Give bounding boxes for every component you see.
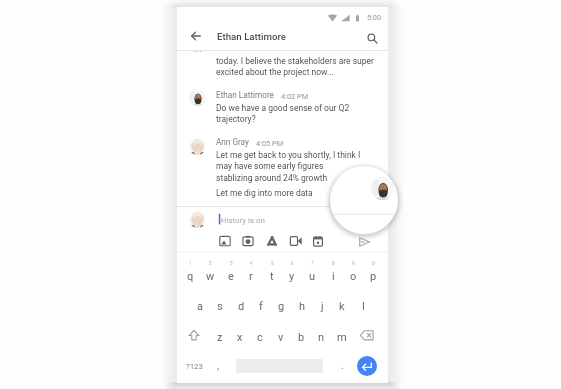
button[interactable]: Insert photo xyxy=(216,232,234,250)
staticText: . xyxy=(341,359,344,371)
staticText: Do we have a good sense of our Q2 xyxy=(216,103,350,113)
staticText: i xyxy=(332,270,335,283)
staticText: 4:02 PM xyxy=(281,92,309,101)
staticText: today. I believe the stakeholders are su… xyxy=(216,56,374,66)
button[interactable]: k xyxy=(332,295,352,317)
staticText: g xyxy=(278,300,285,313)
staticText: ?123 xyxy=(186,362,203,371)
staticText: 8 xyxy=(332,261,335,266)
staticText: n xyxy=(318,331,325,344)
staticText: 5 xyxy=(271,261,274,266)
staticText: History is on xyxy=(221,216,265,225)
button[interactable]: z xyxy=(210,326,230,348)
staticText: 7 xyxy=(311,261,314,266)
button[interactable]: Insert from Drive xyxy=(263,232,281,250)
button[interactable]: p xyxy=(363,265,383,287)
staticText: c xyxy=(257,331,263,344)
button[interactable]: j xyxy=(312,295,332,317)
button[interactable]: w xyxy=(200,265,220,287)
staticText: stablizing around 24% growth xyxy=(216,173,328,183)
staticText: Ethan Lattimore xyxy=(216,90,274,100)
staticText: l xyxy=(362,300,365,313)
button[interactable]: Take photo xyxy=(239,232,257,250)
staticText: excited about the project now... xyxy=(216,67,334,77)
button[interactable]: Search xyxy=(363,29,381,47)
staticText: Ann Gray xyxy=(216,137,249,147)
staticText: 2 xyxy=(209,261,212,266)
button[interactable]: s xyxy=(210,295,230,317)
staticText: s xyxy=(217,300,223,313)
button[interactable]: g xyxy=(271,295,291,317)
button[interactable]: Backspace xyxy=(357,324,377,348)
staticText: q xyxy=(187,270,194,283)
staticText: a xyxy=(197,300,203,313)
button[interactable]: Ethan Lattimore xyxy=(212,25,322,47)
staticText: trajectory? xyxy=(216,114,256,124)
staticText: f xyxy=(259,300,263,313)
button[interactable]: q xyxy=(180,265,200,287)
button[interactable]: v xyxy=(271,326,291,348)
button[interactable]: Shift xyxy=(184,324,204,348)
button[interactable]: , xyxy=(208,354,228,376)
staticText: 4 xyxy=(250,261,253,266)
button[interactable]: c xyxy=(250,326,270,348)
staticText: t xyxy=(270,270,274,283)
staticText: k xyxy=(339,300,345,313)
staticText: y xyxy=(289,270,295,283)
button[interactable]: Send xyxy=(355,233,373,251)
staticText: z xyxy=(217,331,223,344)
staticText: 1 xyxy=(189,261,192,266)
button[interactable]: y xyxy=(282,265,302,287)
staticText: r xyxy=(249,270,253,283)
staticText: 3 xyxy=(230,261,233,266)
button[interactable]: a xyxy=(190,295,210,317)
staticText: p xyxy=(370,270,377,283)
staticText: Let me get back to you shortly, I think … xyxy=(216,150,361,160)
button[interactable]: i xyxy=(323,265,343,287)
staticText: 6 xyxy=(291,261,294,266)
button[interactable]: l xyxy=(353,295,373,317)
button[interactable]: m xyxy=(332,326,352,348)
button[interactable]: d xyxy=(231,295,251,317)
button[interactable]: . xyxy=(332,354,352,376)
button[interactable]: Enter xyxy=(357,356,377,376)
staticText: j xyxy=(321,300,324,313)
button[interactable]: o xyxy=(343,265,363,287)
staticText: m xyxy=(337,331,347,344)
staticText: b xyxy=(298,331,305,344)
staticText: may have some early figures xyxy=(216,161,324,171)
staticText: o xyxy=(350,270,357,283)
staticText: 9 xyxy=(352,261,355,266)
button[interactable]: n xyxy=(311,326,331,348)
staticText: h xyxy=(299,300,306,313)
staticText: 4:05 PM xyxy=(256,139,284,148)
staticText: x xyxy=(237,331,243,344)
button[interactable]: b xyxy=(291,326,311,348)
staticText: , xyxy=(217,359,220,371)
button[interactable]: x xyxy=(230,326,250,348)
button[interactable]: ?123 xyxy=(184,354,205,378)
staticText: d xyxy=(238,300,245,313)
button[interactable]: f xyxy=(251,295,271,317)
staticText: 5:00 xyxy=(367,13,382,22)
button[interactable]: h xyxy=(292,295,312,317)
staticText: v xyxy=(278,331,284,344)
button[interactable]: Insert from Calendar xyxy=(309,232,327,250)
staticText: u xyxy=(309,270,316,283)
button[interactable]: t xyxy=(262,265,282,287)
button[interactable]: u xyxy=(302,265,322,287)
staticText: w xyxy=(206,270,215,283)
button[interactable]: Back xyxy=(187,27,205,45)
staticText: 0 xyxy=(372,261,375,266)
staticText: e xyxy=(228,270,234,283)
staticText: Ethan Lattimore xyxy=(217,31,287,42)
staticText: Let me dig into more data xyxy=(216,188,313,198)
button[interactable]: r xyxy=(241,265,261,287)
button[interactable]: e xyxy=(221,265,241,287)
button[interactable]: Video message xyxy=(286,232,304,250)
